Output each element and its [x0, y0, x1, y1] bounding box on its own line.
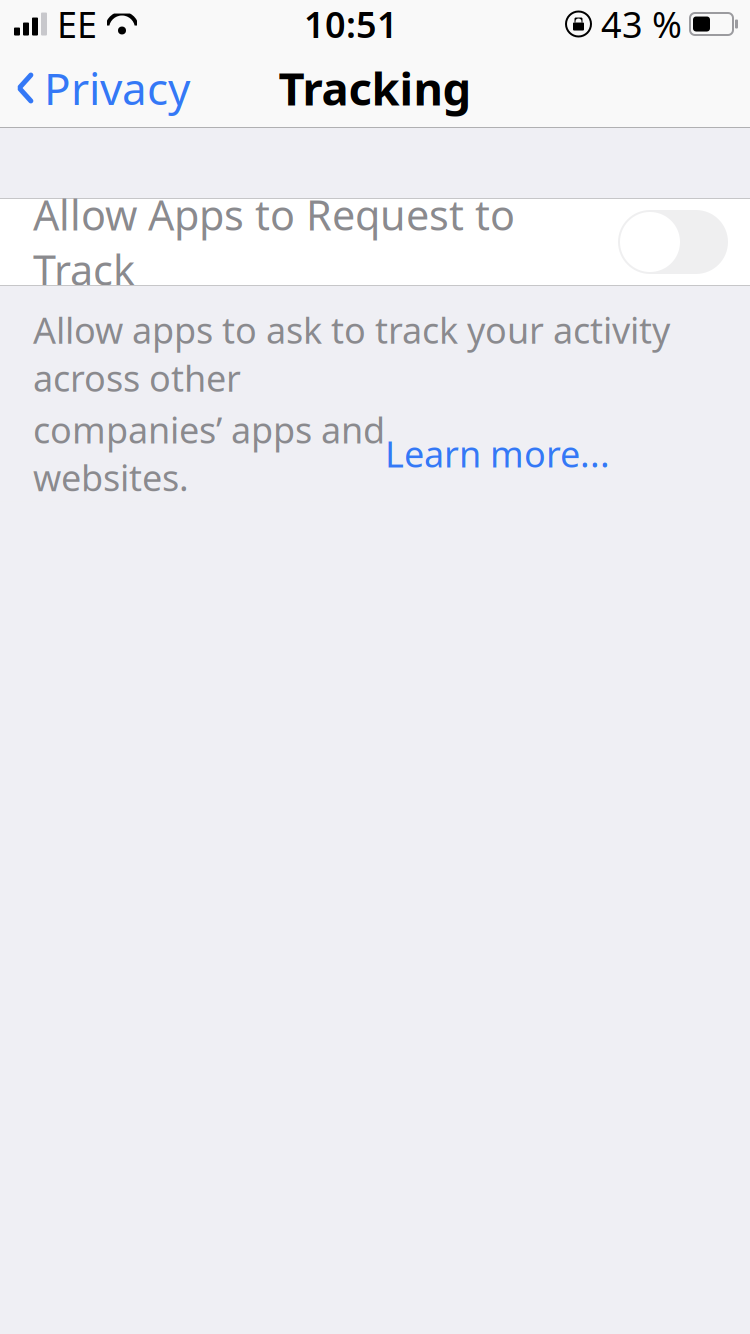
staticText: 10:51 [304, 0, 398, 48]
staticText: Privacy [44, 59, 190, 117]
staticText: Learn more... [385, 429, 610, 477]
staticText: EE [57, 0, 97, 48]
staticText: 43 % [601, 0, 682, 48]
button[interactable]: Allow Apps to Request to Track [0, 199, 750, 285]
staticText: Allow Apps to Request to Track [33, 187, 515, 297]
staticText: companies’ apps and websites. [33, 406, 385, 501]
button[interactable]: Learn more... [385, 429, 610, 477]
staticText: Tracking [278, 58, 471, 118]
staticText: Allow apps to ask to track your activity… [33, 306, 670, 402]
button[interactable]: Privacy [0, 49, 202, 127]
